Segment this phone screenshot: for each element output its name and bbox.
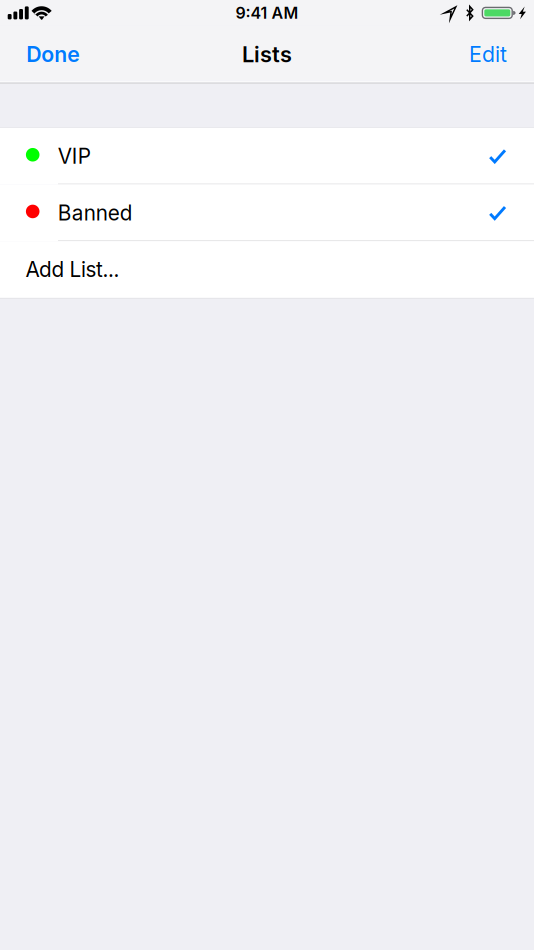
button[interactable]: VIP (0, 128, 534, 184)
staticText: Done (26, 41, 80, 67)
button[interactable]: Add List... (0, 241, 534, 298)
staticText: Add List... (26, 257, 120, 282)
staticText: 9:41 AM (235, 3, 298, 23)
staticText: Banned (58, 200, 133, 225)
staticText: Edit (469, 41, 507, 67)
staticText: Lists (242, 41, 292, 68)
button[interactable]: Done (0, 26, 96, 81)
staticText: VIP (58, 144, 91, 169)
button[interactable]: Banned (0, 184, 534, 241)
button[interactable]: Edit (453, 26, 534, 81)
